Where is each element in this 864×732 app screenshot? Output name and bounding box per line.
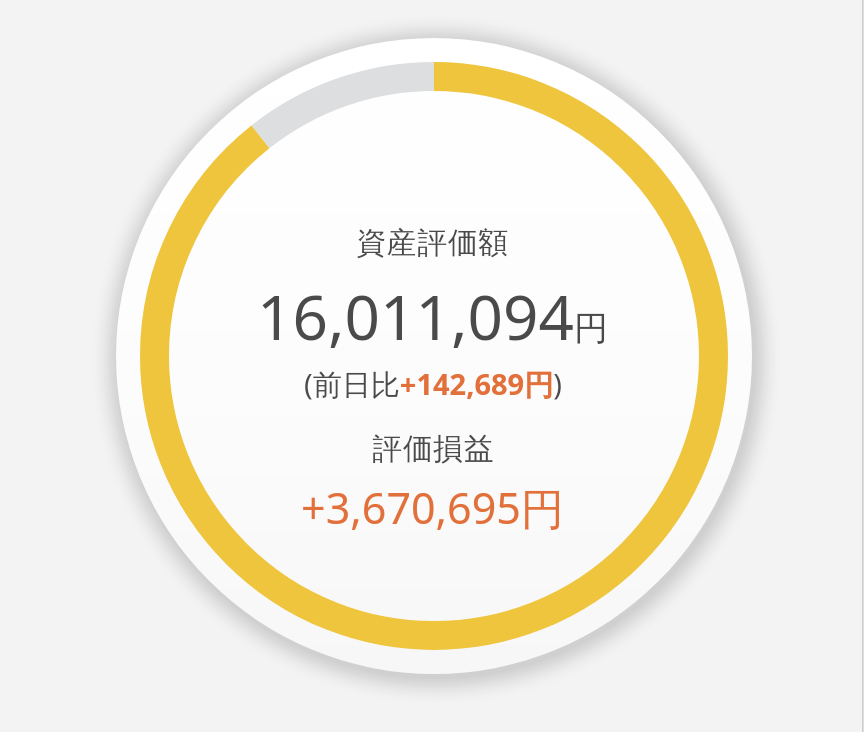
staticText: 資産評価額 (356, 224, 509, 262)
staticText: (前日比+142,689円) (304, 364, 562, 404)
staticText: 16,011,094円 (257, 274, 608, 358)
button[interactable]: 資産評価額サマリー (0, 0, 864, 732)
staticText: 評価損益 (372, 430, 494, 468)
staticText: +3,670,695円 (301, 478, 564, 537)
